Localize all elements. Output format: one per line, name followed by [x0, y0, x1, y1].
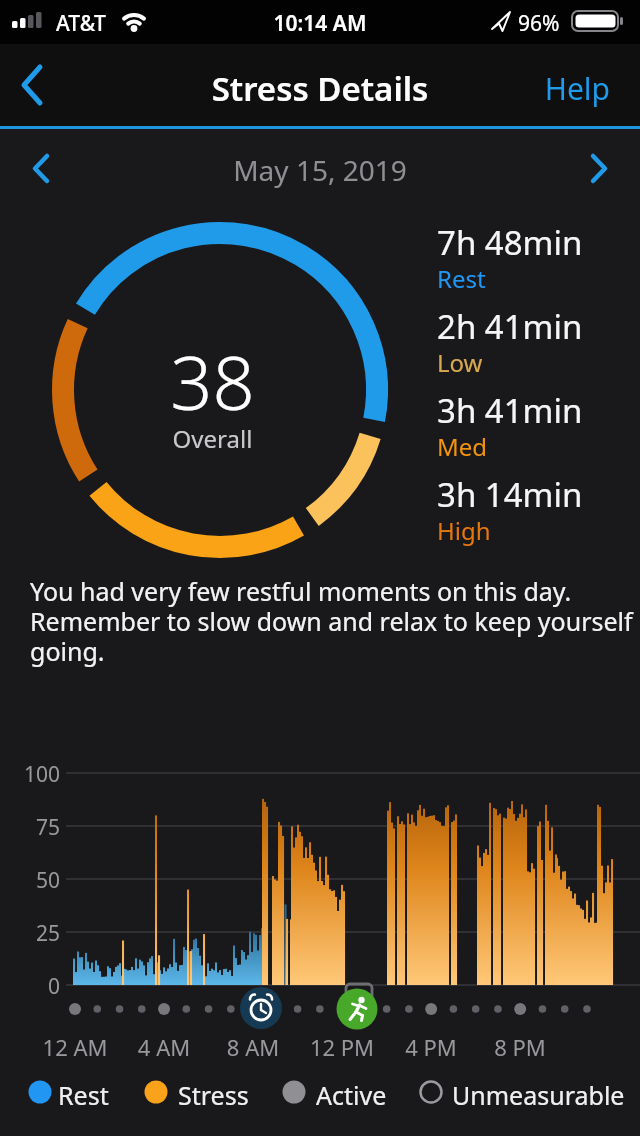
staticText: 96% — [518, 9, 560, 38]
staticText: Rest — [58, 1078, 109, 1112]
staticText: 12 PM — [297, 1032, 387, 1062]
staticText: 25 — [10, 919, 60, 948]
button[interactable] — [570, 140, 625, 195]
staticText: 3h 14min — [437, 472, 583, 517]
staticText: 2h 41min — [437, 304, 583, 349]
staticText: Unmeasurable — [452, 1078, 625, 1112]
staticText: Active — [316, 1078, 387, 1112]
staticText: 8 AM — [208, 1032, 298, 1062]
staticText: 4 PM — [386, 1032, 476, 1062]
button[interactable] — [15, 140, 70, 195]
staticText: 12 AM — [30, 1032, 120, 1062]
staticText: Med — [437, 430, 488, 463]
staticText: 8 PM — [475, 1032, 565, 1062]
staticText: 0 — [10, 972, 60, 1001]
button[interactable] — [0, 56, 60, 110]
staticText: Rest — [437, 262, 486, 295]
staticText: 75 — [10, 813, 60, 842]
staticText: Help — [500, 68, 610, 109]
staticText: 100 — [10, 760, 60, 789]
staticText: Stress — [178, 1078, 249, 1112]
staticText: Overall — [120, 422, 305, 455]
button[interactable] — [238, 985, 284, 1031]
staticText: Low — [437, 346, 483, 379]
staticText: AT&T — [56, 9, 106, 38]
staticText: You had very few restful moments on this… — [30, 574, 640, 668]
staticText: 38 — [120, 331, 305, 432]
button[interactable] — [334, 986, 380, 1032]
staticText: 10:14 AM — [240, 9, 400, 38]
staticText: 3h 41min — [437, 388, 583, 433]
staticText: 7h 48min — [437, 220, 583, 265]
staticText: 4 AM — [119, 1032, 209, 1062]
staticText: High — [437, 514, 491, 547]
staticText: Stress Details — [170, 66, 470, 111]
button[interactable] — [520, 58, 620, 112]
staticText: May 15, 2019 — [220, 151, 420, 189]
staticText: 50 — [10, 866, 60, 895]
